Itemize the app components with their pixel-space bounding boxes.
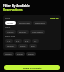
button[interactable]: Dinner — [17, 30, 29, 34]
staticText: Late night — [32, 31, 43, 34]
staticText: Patio — [20, 45, 26, 48]
button[interactable]: Steak — [26, 52, 36, 56]
staticText: Italian — [5, 53, 12, 56]
staticText: Today — [7, 22, 14, 25]
staticText: 1-2 — [7, 40, 11, 43]
button[interactable]: Tomorrow — [17, 21, 32, 25]
button[interactable]: Today — [5, 21, 16, 25]
staticText: Weekend — [35, 22, 45, 25]
staticText: Time — [5, 26, 11, 29]
button[interactable]: Patio — [18, 44, 28, 48]
staticText: Clear all — [50, 17, 59, 20]
button[interactable]: Italian — [3, 52, 14, 56]
staticText: Indoor — [7, 45, 15, 48]
staticText: Date — [5, 17, 10, 20]
button[interactable]: 1-2 — [5, 39, 13, 43]
button[interactable]: Lunch — [5, 30, 16, 34]
staticText: Tomorrow — [19, 22, 30, 25]
button[interactable]: Indoor — [5, 44, 17, 48]
button[interactable]: Late night — [30, 30, 45, 34]
staticText: 3-4 — [16, 40, 20, 43]
staticText: Reservations — [3, 8, 23, 12]
button[interactable]: 7+ — [32, 39, 39, 43]
staticText: Dinner — [19, 31, 27, 34]
staticText: 7+ — [34, 40, 37, 43]
staticText: Lunch — [7, 31, 14, 34]
button[interactable]: 5-6 — [23, 39, 31, 43]
button[interactable]: 3-4 — [14, 39, 22, 43]
staticText: Show 24 results — [23, 66, 42, 69]
staticText: Filter By Available — [3, 4, 30, 8]
staticText: 5-6 — [25, 40, 29, 43]
button[interactable]: Bar — [29, 44, 37, 48]
staticText: Party size — [5, 35, 16, 38]
staticText: Sushi — [17, 53, 23, 56]
staticText: Steak — [28, 53, 34, 56]
button[interactable]: Weekend — [33, 21, 47, 25]
button[interactable]: Show 24 results — [4, 65, 60, 70]
staticText: Bar — [31, 45, 35, 48]
button[interactable]: Sushi — [15, 52, 25, 56]
